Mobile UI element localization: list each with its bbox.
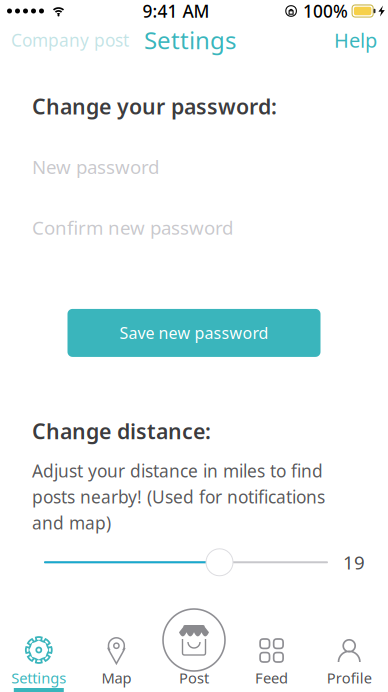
staticText: Map [101,668,131,687]
staticText: Profile [327,668,372,687]
staticText: Change distance: [32,417,211,445]
button[interactable]: Settings [0,595,78,692]
button[interactable]: Map [78,595,155,692]
button[interactable]: Help [334,21,388,59]
staticText: Post [179,668,209,687]
staticText: 100% [303,0,348,22]
button[interactable]: Post [155,595,233,692]
staticText: Adjust your distance in miles to find po… [32,459,325,534]
button[interactable]: Save new password [67,309,320,357]
staticText: Feed [255,668,288,687]
staticText: 9:41 AM [142,0,209,22]
staticText: Help [334,27,377,53]
button[interactable]: Post [162,608,226,672]
staticText: Save new password [119,322,268,343]
staticText: Change your password: [32,92,277,120]
button[interactable]: Company post [0,22,129,57]
staticText: Confirm new password [32,215,233,240]
staticText: Company post [11,28,129,51]
staticText: 19 [343,550,365,575]
button[interactable]: Profile [310,595,388,692]
button[interactable]: Feed [233,595,310,692]
staticText: Settings [11,668,66,687]
staticText: Settings [144,24,236,56]
staticText: New password [32,154,159,179]
